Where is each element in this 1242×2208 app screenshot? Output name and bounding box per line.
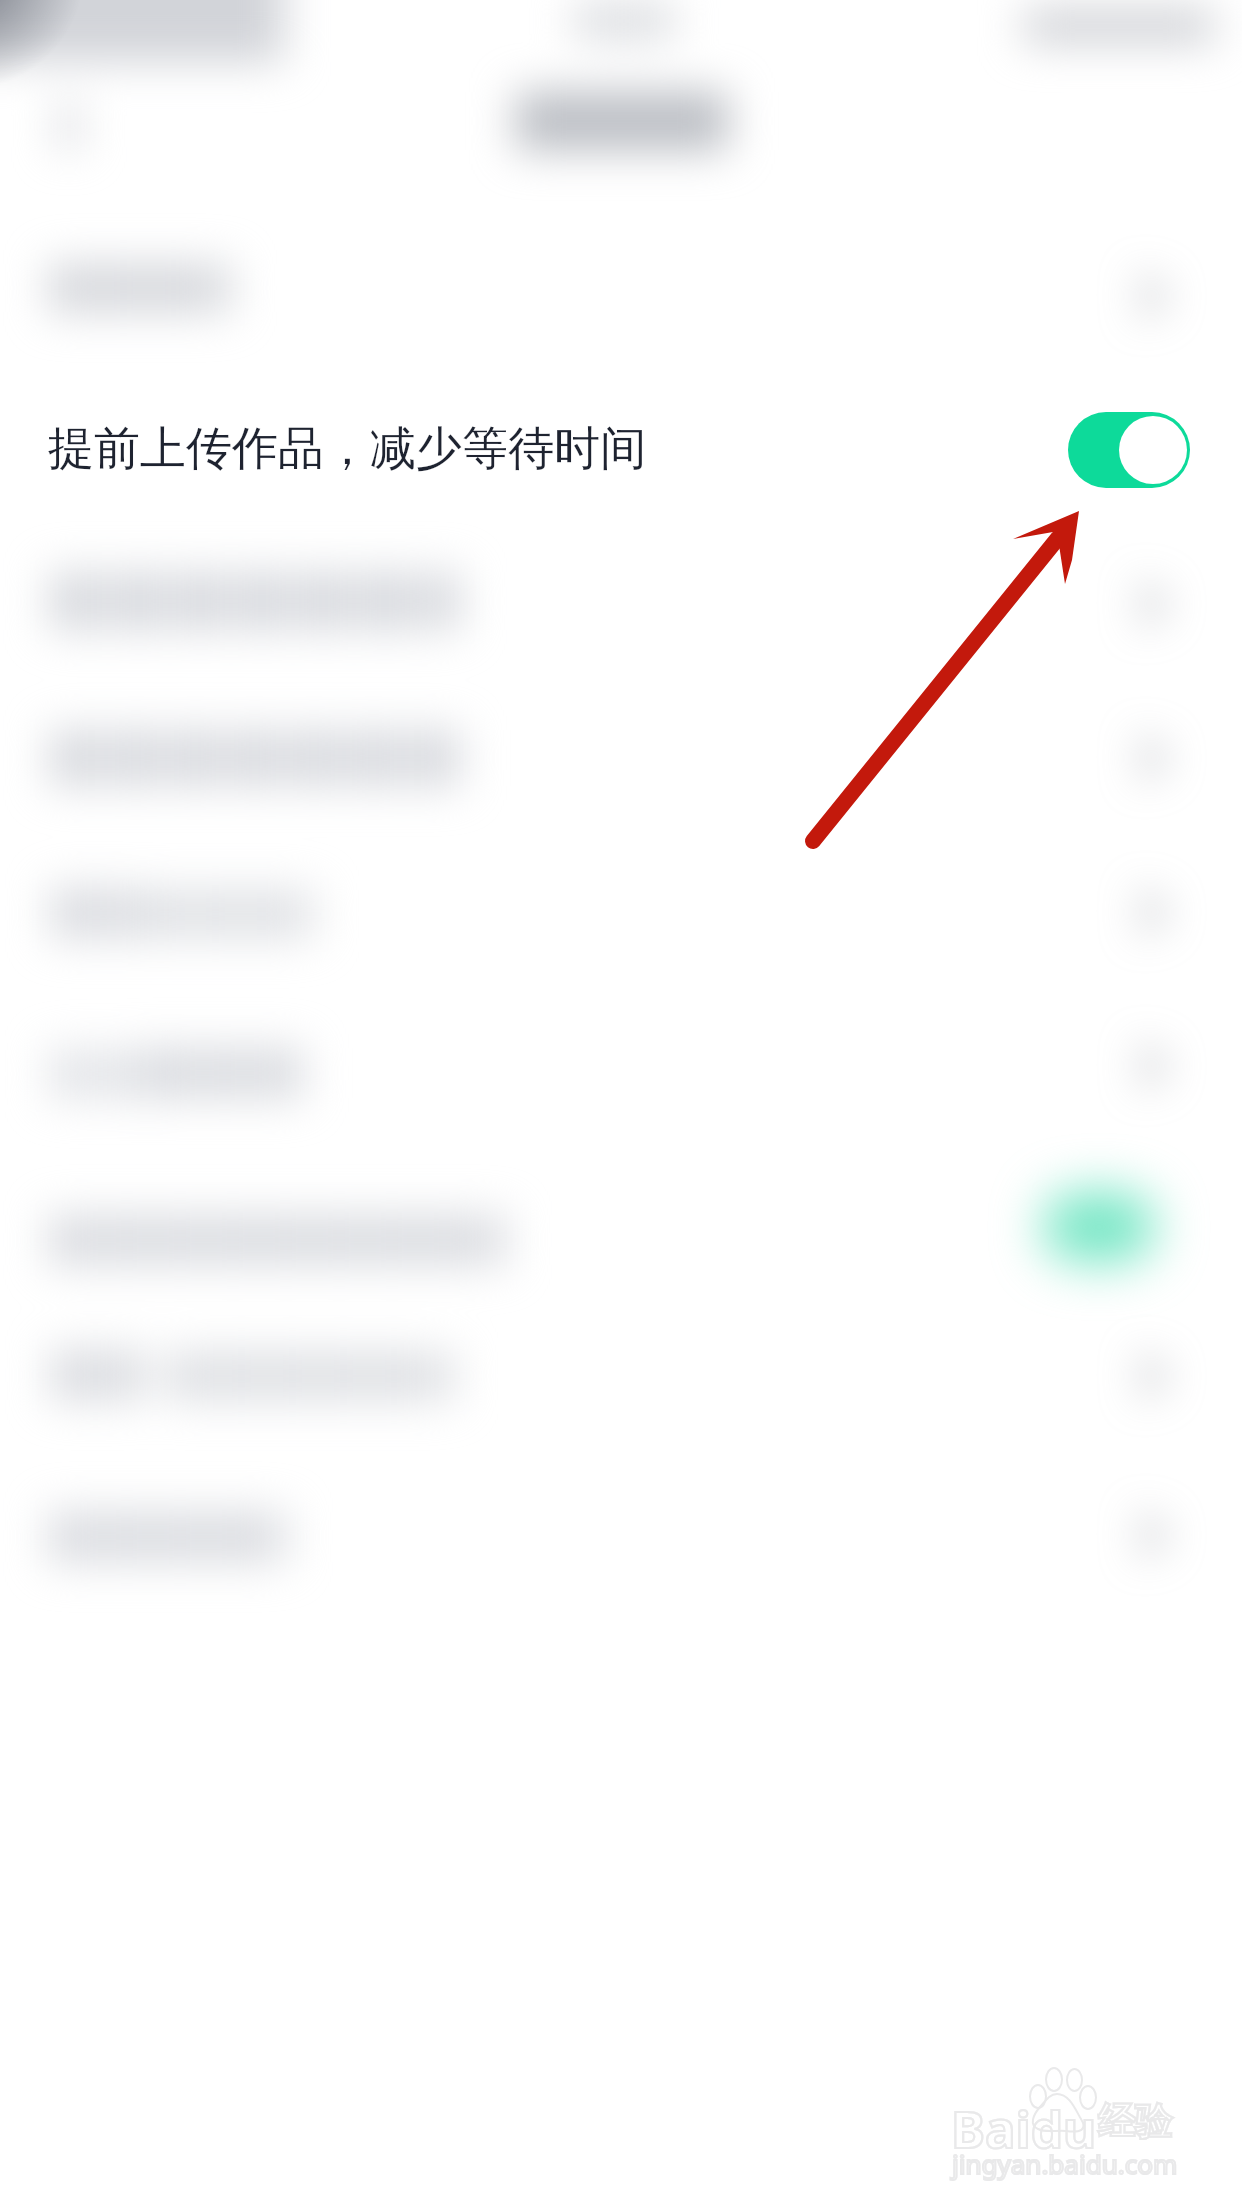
- button[interactable]: 提前上传作品，减少等待时间: [0, 370, 1242, 530]
- button[interactable]: Upload works early, switch on: [1068, 412, 1190, 488]
- staticText: jingyan.baidu.com: [952, 2146, 1178, 2181]
- staticText: Baidu: [951, 2093, 1097, 2162]
- staticText: 提前上传作品，减少等待时间: [48, 420, 1068, 478]
- staticText: 经验: [1098, 2098, 1172, 2145]
